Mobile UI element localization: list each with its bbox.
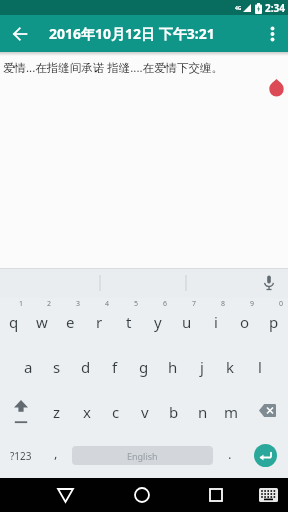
staticText: a (24, 357, 33, 377)
button[interactable]: g (129, 343, 158, 388)
button[interactable]: 0 (259, 298, 288, 343)
staticText: , (54, 444, 58, 462)
staticText: q (9, 312, 19, 332)
staticText: 1 (19, 299, 24, 309)
button[interactable]: b (159, 388, 188, 433)
staticText: h (168, 357, 178, 377)
staticText: 0 (279, 299, 284, 309)
staticText: 2 (47, 299, 52, 309)
staticText: o (240, 312, 250, 332)
button[interactable]: 6 (143, 298, 172, 343)
staticText: n (198, 402, 208, 422)
staticText: y (154, 312, 162, 332)
staticText: l (258, 357, 262, 377)
button[interactable] (0, 388, 42, 433)
staticText: z (53, 402, 61, 422)
staticText: 4 (105, 299, 110, 309)
staticText: English (127, 450, 158, 462)
button[interactable]: c (101, 388, 130, 433)
staticText: . (228, 445, 232, 463)
button[interactable]: 9 (230, 298, 259, 343)
button[interactable]: English (72, 446, 213, 465)
button[interactable]: 1 (0, 298, 28, 343)
button[interactable]: d (71, 343, 100, 388)
button[interactable] (51, 481, 79, 509)
staticText: 6 (163, 299, 168, 309)
staticText: p (269, 312, 279, 332)
button[interactable]: l (245, 343, 274, 388)
staticText: i (214, 312, 218, 332)
staticText: 5 (134, 299, 139, 309)
button[interactable] (258, 272, 280, 294)
button[interactable]: 7 (172, 298, 201, 343)
staticText: 7 (192, 299, 197, 309)
staticText: 3 (76, 299, 81, 309)
staticText: 2016年10月12日 下午3:21 (49, 24, 215, 43)
staticText: k (226, 357, 235, 377)
staticText: c (112, 402, 120, 422)
staticText: 2:34 (265, 1, 285, 15)
staticText: u (182, 312, 192, 332)
button[interactable]: . (216, 433, 243, 478)
button[interactable] (8, 22, 32, 46)
button[interactable]: 2 (28, 298, 56, 343)
staticText: 爱情...在指缝间承诺 指缝....在爱情下交缠。 (3, 60, 224, 76)
button[interactable]: ?123 (0, 433, 42, 478)
staticText: r (96, 312, 103, 332)
button[interactable]: , (42, 433, 69, 478)
button[interactable]: v (130, 388, 159, 433)
button[interactable] (243, 433, 288, 478)
button[interactable] (254, 481, 282, 509)
button[interactable]: 8 (201, 298, 230, 343)
button[interactable]: 4 (85, 298, 114, 343)
staticText: 9 (250, 299, 255, 309)
staticText: d (81, 357, 91, 377)
staticText: v (141, 402, 149, 422)
staticText: w (36, 312, 48, 332)
button[interactable] (128, 481, 156, 509)
button[interactable]: z (42, 388, 72, 433)
button[interactable]: n (188, 388, 217, 433)
staticText: g (139, 357, 149, 377)
button[interactable]: 3 (56, 298, 85, 343)
staticText: f (112, 357, 118, 377)
staticText: s (53, 357, 61, 377)
button[interactable]: f (100, 343, 129, 388)
button[interactable]: x (72, 388, 101, 433)
button[interactable]: j (187, 343, 216, 388)
staticText: ?123 (10, 449, 32, 463)
button[interactable]: a (14, 343, 42, 388)
button[interactable] (262, 24, 282, 44)
staticText: 8 (221, 299, 226, 309)
button[interactable] (202, 481, 230, 509)
staticText: b (169, 402, 179, 422)
button[interactable]: 5 (114, 298, 143, 343)
staticText: e (66, 312, 75, 332)
button[interactable]: k (216, 343, 245, 388)
button[interactable]: s (42, 343, 71, 388)
staticText: m (224, 402, 239, 422)
button[interactable]: m (217, 388, 246, 433)
button[interactable]: h (158, 343, 187, 388)
staticText: 4G (235, 5, 242, 12)
staticText: x (83, 402, 91, 422)
staticText: j (200, 357, 204, 377)
button[interactable] (246, 388, 288, 433)
staticText: t (126, 312, 132, 332)
